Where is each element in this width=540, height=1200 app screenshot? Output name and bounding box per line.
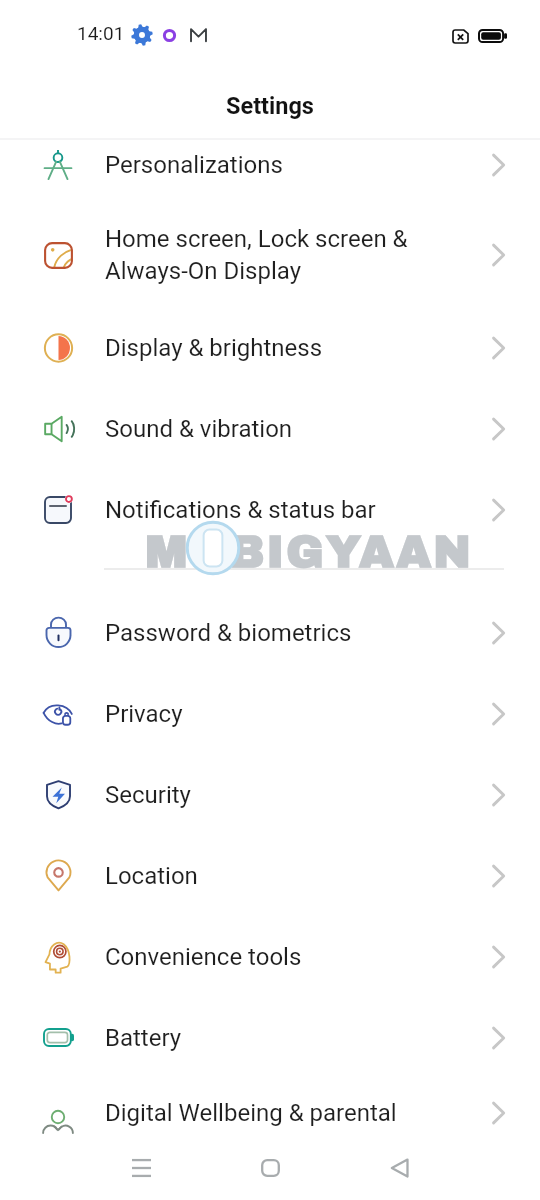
- button[interactable]: Back: [369, 1138, 429, 1198]
- staticText: Digital Wellbeing & parental: [105, 1099, 397, 1127]
- staticText: Settings: [226, 92, 314, 120]
- staticText: Personalizations: [105, 151, 283, 179]
- button[interactable]: Password & biometrics: [0, 592, 540, 673]
- staticText: Always-On Display: [105, 257, 302, 285]
- button[interactable]: Security: [0, 754, 540, 835]
- button[interactable]: Home screen, Lock screen &: [0, 203, 540, 307]
- staticText: Battery: [105, 1024, 182, 1052]
- staticText: Location: [105, 862, 198, 890]
- staticText: Home screen, Lock screen &: [105, 225, 408, 253]
- staticText: Convenience tools: [105, 943, 302, 971]
- button[interactable]: Notifications & status bar: [0, 469, 540, 550]
- button[interactable]: Personalizations: [0, 124, 540, 205]
- button[interactable]: Convenience tools: [0, 916, 540, 997]
- staticText: Sound & vibration: [105, 415, 293, 443]
- staticText: MOBIGYAAN: [145, 527, 474, 576]
- button[interactable]: Digital Wellbeing & parental: [0, 1072, 540, 1153]
- staticText: Password & biometrics: [105, 619, 352, 647]
- button[interactable]: Display & brightness: [0, 307, 540, 388]
- button[interactable]: Home: [240, 1138, 300, 1198]
- staticText: Privacy: [105, 700, 183, 728]
- button[interactable]: Privacy: [0, 673, 540, 754]
- staticText: 14:01: [77, 22, 125, 44]
- staticText: Security: [105, 781, 191, 809]
- button[interactable]: Sound & vibration: [0, 388, 540, 469]
- button[interactable]: Battery: [0, 997, 540, 1078]
- staticText: Display & brightness: [105, 334, 323, 362]
- button[interactable]: Location: [0, 835, 540, 916]
- staticText: Notifications & status bar: [105, 496, 376, 524]
- button[interactable]: Recent apps: [111, 1138, 171, 1198]
